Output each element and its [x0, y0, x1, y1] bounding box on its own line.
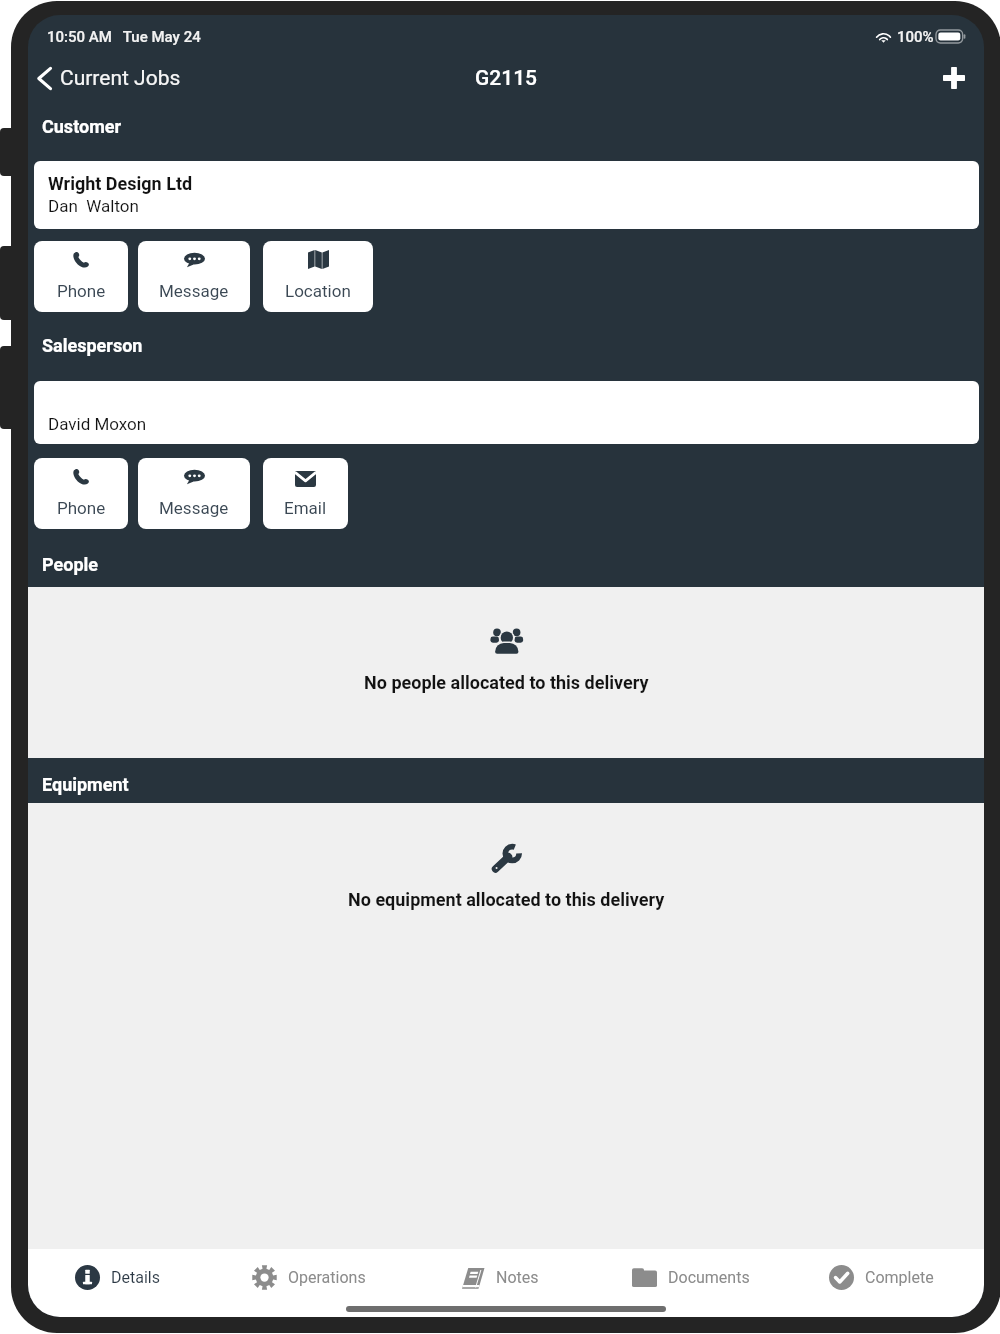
staticText: Email: [284, 498, 327, 518]
staticText: Notes: [496, 1268, 539, 1287]
staticText: Phone: [57, 498, 106, 518]
button[interactable]: Wright Design Ltd: [34, 161, 979, 229]
staticText: David Moxon: [48, 414, 147, 434]
staticText: No people allocated to this delivery: [364, 672, 649, 693]
staticText: Salesperson: [42, 335, 143, 356]
button[interactable]: Phone: [34, 241, 128, 312]
staticText: No equipment allocated to this delivery: [348, 889, 665, 910]
staticText: Complete: [865, 1268, 934, 1287]
staticText: 100%: [897, 28, 934, 46]
staticText: Equipment: [42, 774, 129, 795]
button[interactable]: David Moxon: [34, 381, 979, 444]
staticText: Phone: [57, 281, 106, 301]
button[interactable]: Notes: [404, 1249, 595, 1305]
button[interactable]: Message: [138, 458, 250, 529]
staticText: 10:50 AM Tue May 24: [47, 28, 201, 46]
staticText: Wright Design Ltd: [48, 173, 193, 194]
staticText: Documents: [668, 1268, 750, 1287]
staticText: People: [42, 554, 99, 575]
button[interactable]: Current Jobs: [30, 61, 191, 96]
button[interactable]: Add: [928, 59, 979, 97]
staticText: Message: [159, 498, 229, 518]
button[interactable]: Email: [263, 458, 348, 529]
staticText: Details: [111, 1268, 160, 1287]
staticText: G2115: [475, 66, 538, 91]
button[interactable]: Message: [138, 241, 250, 312]
staticText: Current Jobs: [60, 66, 181, 91]
button[interactable]: Location: [263, 241, 373, 312]
staticText: Dan Walton: [48, 196, 139, 216]
button[interactable]: Operations: [213, 1249, 404, 1305]
button[interactable]: Complete: [786, 1249, 977, 1305]
button[interactable]: Phone: [34, 458, 128, 529]
staticText: Customer: [42, 116, 122, 137]
staticText: Operations: [288, 1268, 366, 1287]
button[interactable]: Details: [28, 1249, 213, 1305]
staticText: Location: [285, 281, 351, 301]
staticText: Message: [159, 281, 229, 301]
button[interactable]: Documents: [595, 1249, 786, 1305]
